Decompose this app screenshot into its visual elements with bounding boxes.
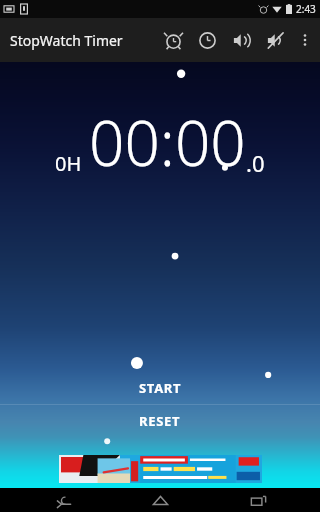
- button[interactable]: START: [0, 372, 320, 404]
- button[interactable]: Timer: [190, 23, 224, 57]
- staticText: START: [139, 379, 182, 397]
- staticText: RESET: [139, 412, 181, 430]
- staticText: 2:43: [296, 2, 316, 16]
- button[interactable]: Sound on: [224, 23, 258, 57]
- button[interactable]: Recent apps: [223, 488, 293, 512]
- button[interactable]: Mute: [258, 23, 292, 57]
- staticText: StopWatch Timer: [10, 31, 123, 50]
- button[interactable]: RESET: [0, 405, 320, 437]
- staticText: 00:00: [89, 100, 246, 184]
- button[interactable]: More options: [292, 27, 318, 53]
- button[interactable]: Advertisement: [59, 455, 262, 483]
- button[interactable]: Home: [125, 488, 195, 512]
- button[interactable]: Back: [28, 488, 98, 512]
- button[interactable]: Alarm: [156, 23, 190, 57]
- staticText: 0H: [55, 150, 82, 177]
- staticText: .0: [246, 148, 265, 178]
